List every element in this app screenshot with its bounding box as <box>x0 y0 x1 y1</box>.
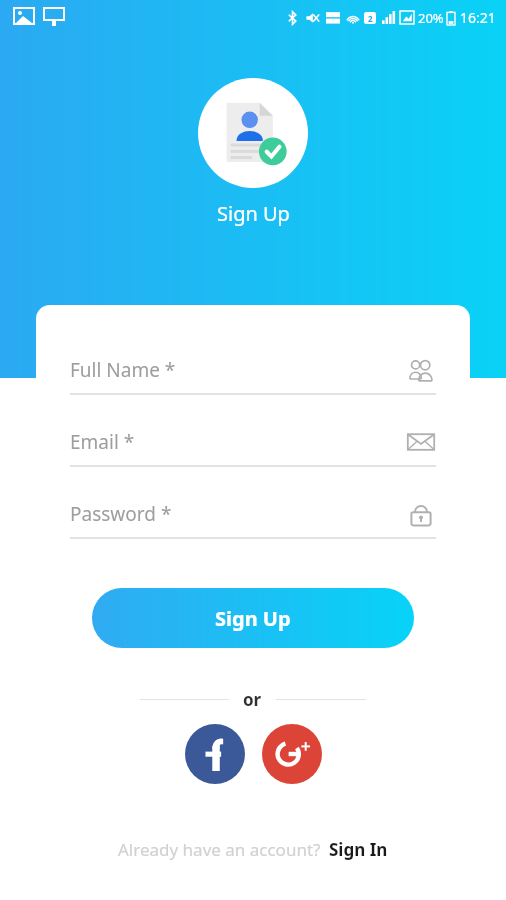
staticText: 20% <box>418 9 444 27</box>
button[interactable]: Sign Up <box>92 588 414 648</box>
staticText: Sign In <box>329 838 388 861</box>
staticText: Email * <box>70 429 406 455</box>
staticText: Sign Up <box>215 605 291 632</box>
staticText: 16:21 <box>460 8 496 27</box>
button[interactable]: Sign In <box>329 838 388 861</box>
staticText: 2 <box>368 13 373 24</box>
other: Email <box>406 427 436 457</box>
other: Full name <box>406 355 436 385</box>
staticText: or <box>243 688 262 711</box>
button[interactable]: Email * <box>70 425 436 467</box>
staticText: Sign Up <box>217 200 290 227</box>
button[interactable]: Sign up with Facebook <box>185 724 245 784</box>
other: Password <box>406 499 436 529</box>
button[interactable]: Sign up with Google Plus <box>262 724 322 784</box>
button[interactable]: Password * <box>70 497 436 539</box>
staticText: Full Name * <box>70 357 406 383</box>
staticText: Already have an account? <box>118 838 321 861</box>
staticText: Password * <box>70 501 406 527</box>
button[interactable]: Full Name * <box>70 353 436 395</box>
